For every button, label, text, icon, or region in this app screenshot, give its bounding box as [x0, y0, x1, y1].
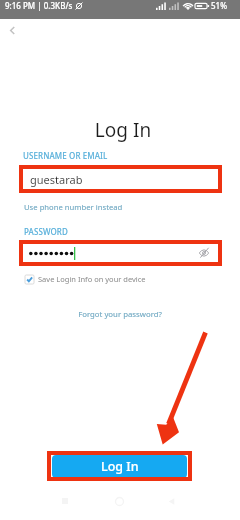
staticText: USERNAME OR EMAIL [23, 150, 108, 161]
staticText: Save Login Info on your device [38, 274, 146, 284]
staticText: 51% [211, 0, 227, 11]
staticText: Log In [101, 458, 139, 475]
staticText: Log In [3, 117, 240, 143]
staticText: 9:16 PM | 0.3KB/s [5, 0, 73, 11]
button[interactable]: Back [2, 20, 22, 40]
button[interactable]: Log In [52, 455, 187, 478]
button[interactable]: guestarab [19, 165, 222, 193]
button[interactable] [19, 240, 222, 266]
button[interactable]: Use phone number instead [24, 202, 123, 212]
button[interactable]: Forgot your password? [0, 309, 240, 320]
staticText: PASSWORD [24, 226, 68, 237]
staticText: guestarab [30, 172, 83, 187]
button[interactable]: Save Login Info on your device [25, 274, 146, 284]
